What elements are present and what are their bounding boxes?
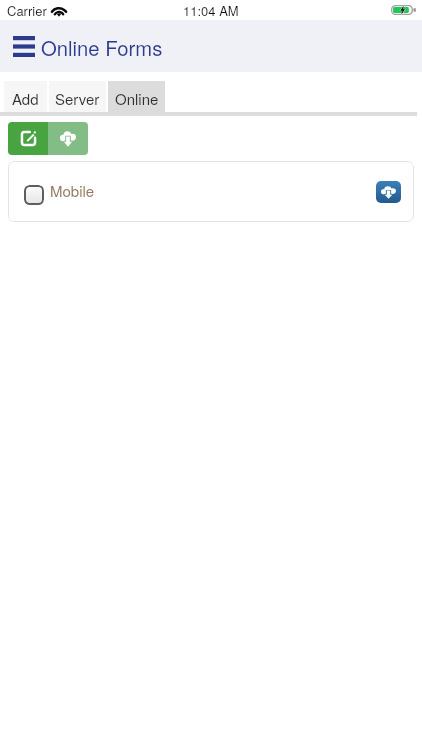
button[interactable]: Select Mobile form [24,185,44,205]
staticText: Server [55,88,100,109]
button[interactable]: Server [49,81,106,112]
staticText: Carrier [7,1,47,20]
button[interactable]: Online [108,81,165,112]
staticText: Mobile [50,180,95,201]
staticText: Online [115,88,159,109]
button[interactable]: Open navigation menu [9,32,38,61]
button[interactable]: Edit form [8,122,48,155]
staticText: Online Forms [41,33,163,62]
button[interactable]: Download all forms [48,122,88,155]
staticText: Add [12,88,39,109]
button[interactable]: Download Mobile form [376,181,401,203]
button[interactable]: Add [4,81,47,112]
staticText: 11:04 AM [183,1,239,20]
